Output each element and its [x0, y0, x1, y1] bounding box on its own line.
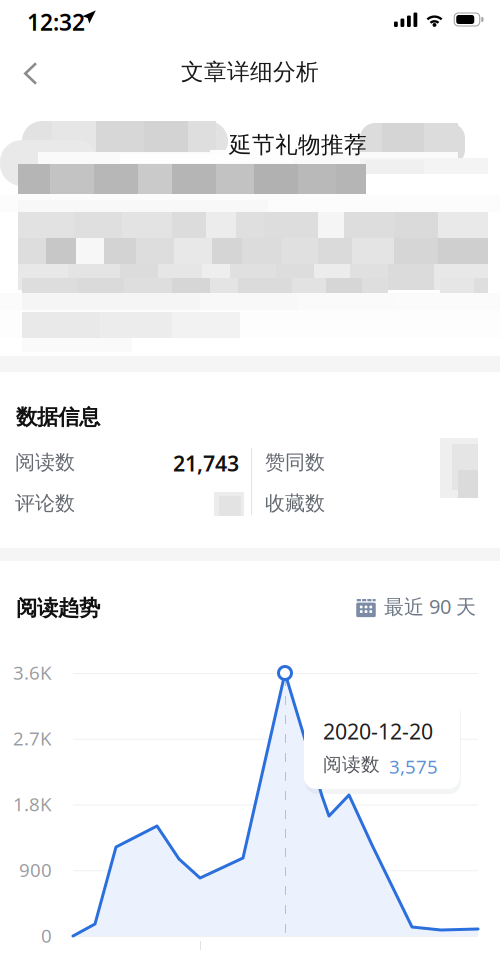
staticText: 21,743: [173, 449, 239, 477]
staticText: 阅读数: [15, 450, 75, 475]
staticText: 2020-12-20: [323, 717, 433, 745]
staticText: 12:32: [27, 7, 85, 37]
staticText: 最近 90 天: [384, 593, 476, 620]
staticText: 阅读数: [323, 753, 380, 776]
staticText: 900: [19, 857, 52, 882]
staticText: 3,575: [389, 754, 438, 779]
staticText: 3.6K: [13, 660, 52, 685]
staticText: 0: [41, 923, 52, 948]
staticText: 数据信息: [16, 404, 100, 430]
staticText: 1.8K: [13, 791, 52, 816]
staticText: 延节礼物推荐: [229, 131, 367, 159]
staticText: 文章详细分析: [181, 58, 319, 86]
staticText: 收藏数: [265, 491, 325, 516]
button[interactable]: Back: [6, 50, 56, 97]
staticText: 2.7K: [13, 726, 52, 751]
staticText: 阅读趋势: [16, 595, 100, 621]
staticText: 赞同数: [265, 450, 325, 475]
staticText: 评论数: [15, 491, 75, 516]
button[interactable]: 最近 90 天: [352, 587, 480, 626]
